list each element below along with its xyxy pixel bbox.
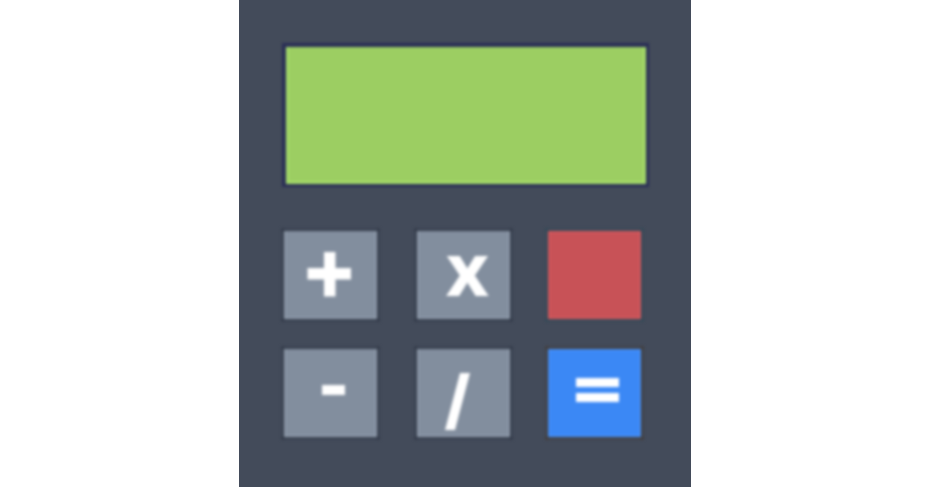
button[interactable]: Equals: [545, 346, 644, 440]
button[interactable]: Divide: [414, 346, 513, 440]
button[interactable]: Plus: [281, 228, 380, 322]
button[interactable]: Multiply: [414, 228, 513, 322]
staticText: x: [446, 217, 489, 305]
button[interactable]: Display: [282, 43, 649, 187]
button[interactable]: Clear: [545, 228, 644, 322]
button[interactable]: Minus: [281, 346, 380, 440]
